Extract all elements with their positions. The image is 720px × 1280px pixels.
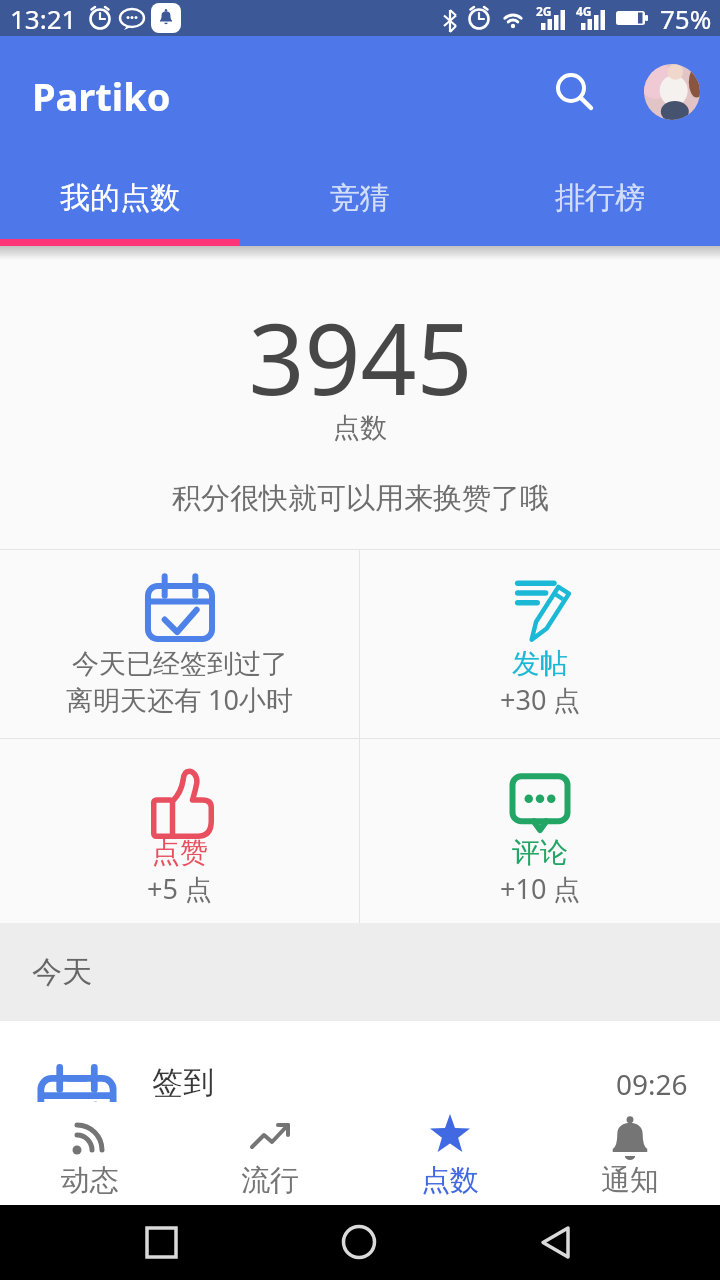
staticText: 积分很快就可以用来换赞了哦	[172, 480, 549, 517]
staticText: 通知	[601, 1162, 659, 1199]
button[interactable]: 评论	[360, 739, 720, 923]
button[interactable]: 动态	[0, 1102, 180, 1205]
staticText: 13:21	[10, 1, 77, 36]
staticText: 09:26	[616, 1065, 688, 1103]
staticText: 点赞	[152, 835, 208, 870]
button[interactable]	[644, 64, 700, 120]
staticText: 排行榜	[555, 179, 645, 217]
button[interactable]: 发帖	[360, 550, 720, 738]
staticText: 动态	[61, 1162, 119, 1199]
staticText: 我的点数	[60, 179, 180, 217]
staticText: +5 点	[147, 870, 212, 905]
staticText: 签到	[152, 1063, 214, 1102]
staticText: 竞猜	[330, 179, 390, 217]
staticText: 流行	[241, 1162, 299, 1199]
staticText: 今天已经签到过了	[72, 647, 288, 681]
button[interactable]: 签到	[0, 1021, 720, 1102]
button[interactable]: 点赞	[0, 739, 359, 923]
button[interactable]: 我的点数	[0, 150, 240, 246]
staticText: +30 点	[500, 681, 581, 716]
button[interactable]: 今天已经签到过了	[0, 550, 359, 738]
staticText: 4G	[576, 3, 592, 19]
staticText: 75%	[660, 1, 712, 36]
staticText: 发帖	[512, 646, 568, 681]
staticText: 3945	[248, 290, 473, 400]
staticText: Partiko	[32, 70, 171, 122]
button[interactable]: 流行	[180, 1102, 360, 1205]
staticText: 2G	[536, 3, 552, 19]
button[interactable]: 竞猜	[240, 150, 480, 246]
button[interactable]: 排行榜	[480, 150, 720, 246]
button[interactable]: 通知	[540, 1102, 720, 1205]
staticText: +10 点	[500, 870, 581, 905]
staticText: 评论	[512, 835, 568, 870]
staticText: 今天	[32, 953, 92, 991]
staticText: 点数	[333, 411, 387, 445]
button[interactable]	[553, 70, 597, 114]
staticText: 离明天还有 10小时	[66, 681, 293, 716]
button[interactable]: 点数	[360, 1102, 540, 1205]
staticText: 点数	[421, 1162, 479, 1199]
